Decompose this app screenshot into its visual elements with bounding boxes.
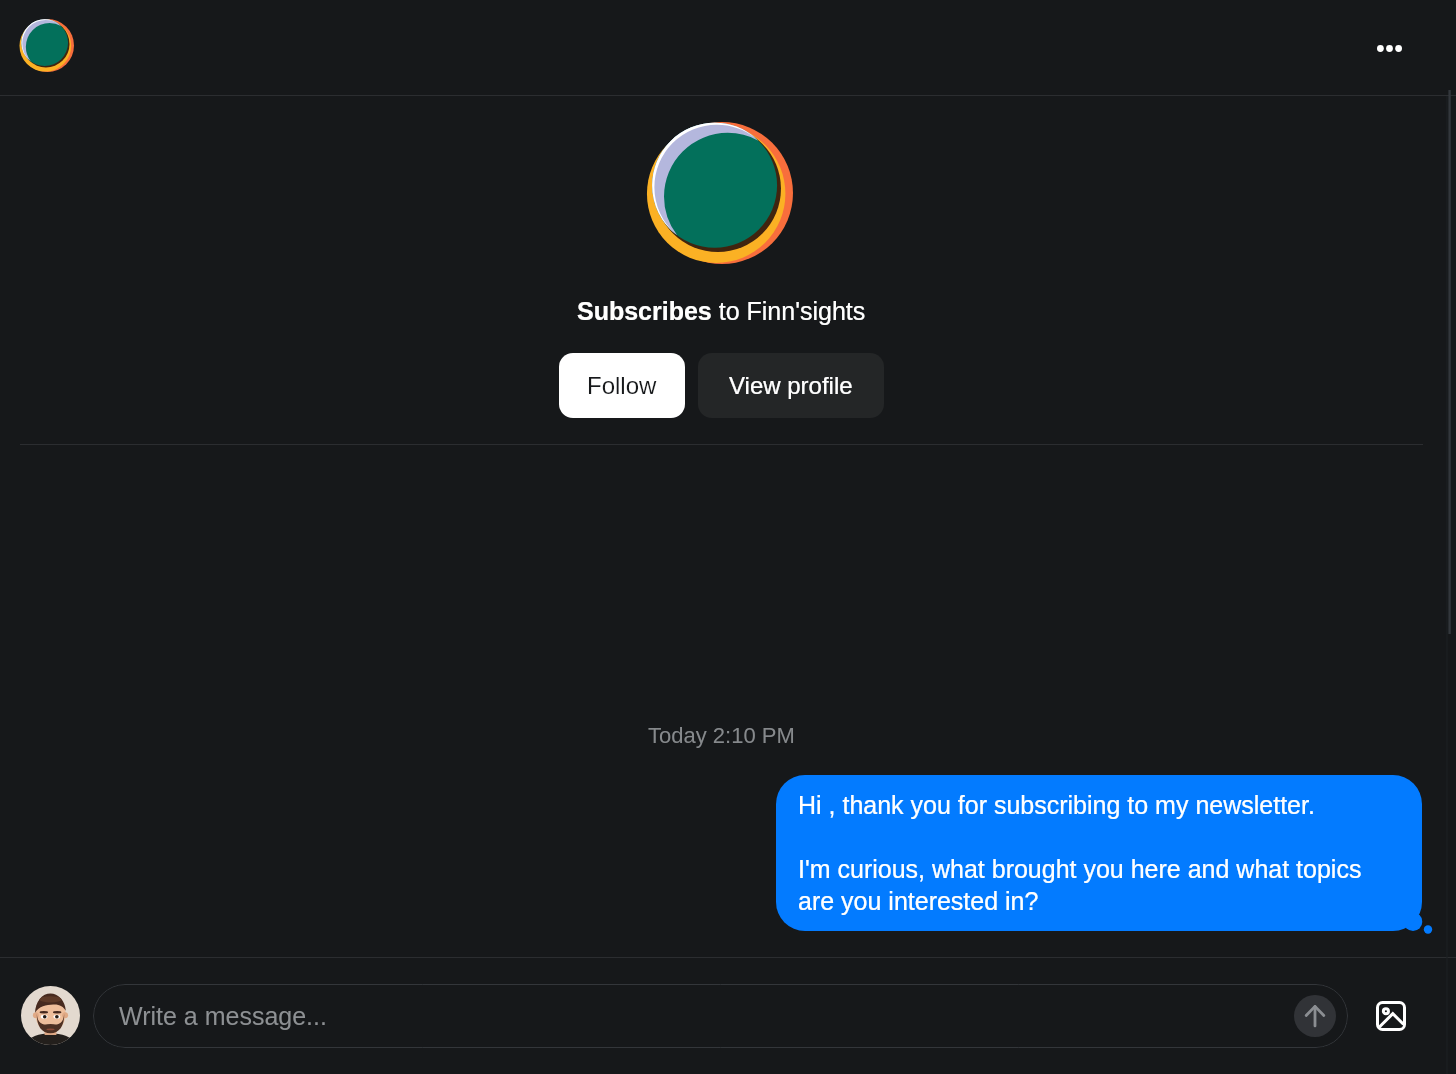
staticText: Write a message... [119,1002,327,1030]
staticText: Today 2:10 PM [648,723,795,748]
button[interactable]: More options [1363,22,1415,74]
button[interactable]: Finn'sights profile [12,10,82,80]
staticText: Follow [587,372,657,399]
button[interactable]: Hi , thank you for subscribing to my new… [776,775,1422,931]
button[interactable]: Follow [559,353,685,418]
button[interactable]: Your profile [21,986,80,1045]
staticText: View profile [729,372,853,399]
button[interactable]: Write a message... [93,984,1348,1048]
staticText: Hi , thank you for subscribing to my new… [798,791,1398,915]
button[interactable]: Send [1294,995,1336,1037]
button[interactable]: View profile [698,353,884,418]
staticText: Subscribes to Finn'sights [577,297,866,325]
button[interactable]: Attach image [1368,993,1414,1039]
